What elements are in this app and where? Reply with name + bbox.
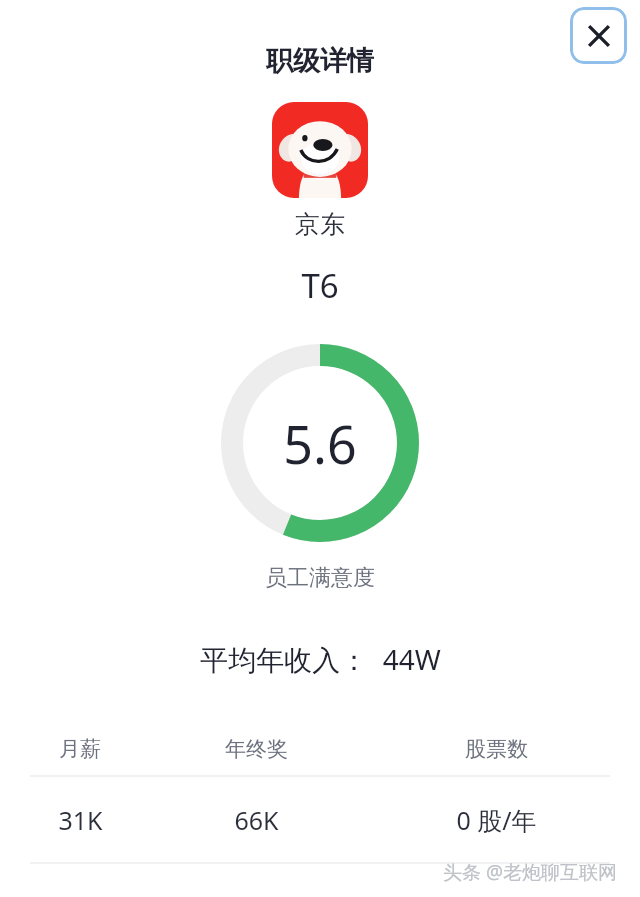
staticText: 31K [58, 803, 103, 837]
staticText: 66K [234, 803, 279, 837]
staticText: 年终奖 [225, 736, 288, 762]
staticText: 0 股/年 [456, 803, 537, 837]
staticText: 职级详情 [266, 44, 374, 78]
button[interactable]: 关闭 [570, 7, 627, 64]
staticText: 5.6 [283, 408, 357, 479]
staticText: 月薪 [59, 736, 101, 762]
button[interactable]: 京东 [272, 102, 368, 198]
staticText: 股票数 [465, 736, 528, 762]
staticText: 员工满意度 [265, 564, 375, 592]
staticText: T6 [301, 263, 339, 308]
staticText: 京东 [295, 209, 345, 240]
staticText: 平均年收入： 44W [200, 640, 441, 678]
staticText: 头条 @老炮聊互联网 [443, 859, 618, 885]
